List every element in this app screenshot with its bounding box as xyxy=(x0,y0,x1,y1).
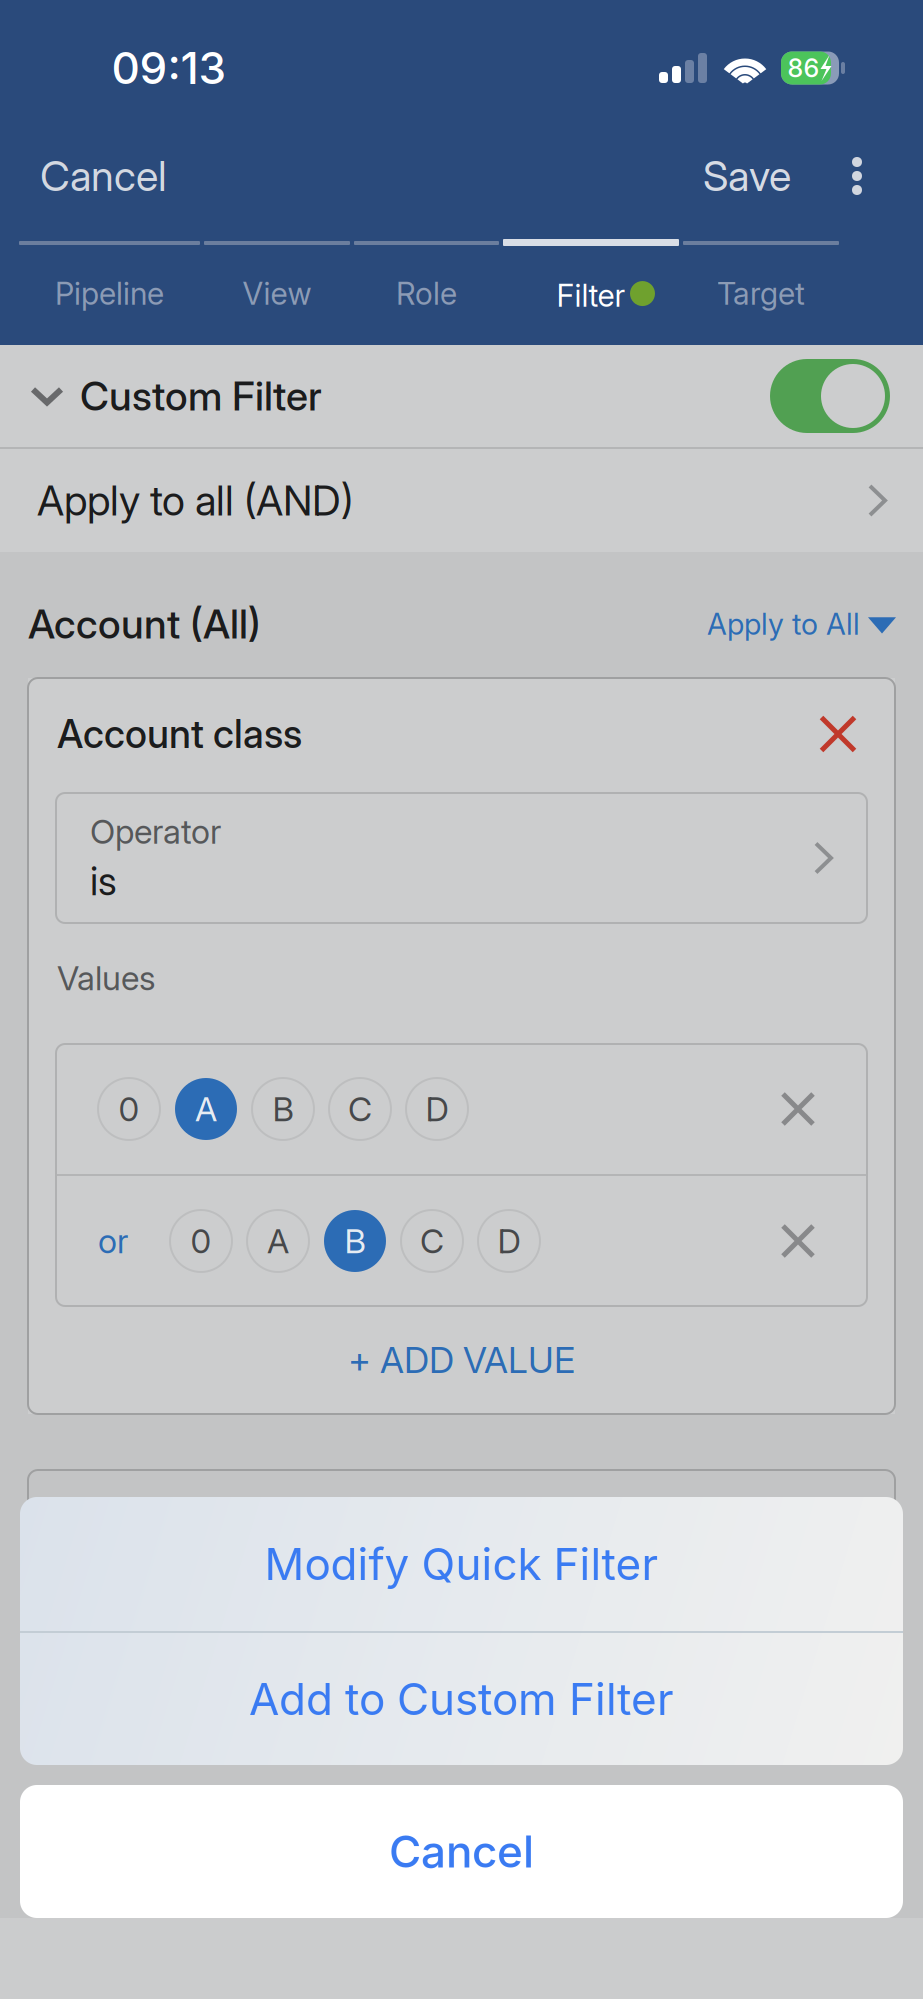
staticText: 0 xyxy=(190,1221,211,1261)
button[interactable]: A xyxy=(175,1078,237,1140)
staticText: 86 xyxy=(787,53,819,83)
button[interactable]: Role xyxy=(352,239,501,349)
button[interactable]: More options xyxy=(824,120,890,232)
button[interactable]: C xyxy=(329,1078,391,1140)
staticText: + ADD VALUE xyxy=(348,1338,575,1382)
staticText: Target xyxy=(717,275,805,312)
staticText: 09:13 xyxy=(111,41,226,95)
button[interactable]: 0 xyxy=(170,1210,232,1272)
staticText: Cancel xyxy=(40,151,167,201)
staticText: D xyxy=(497,1221,520,1261)
staticText: Apply to all (AND) xyxy=(37,475,353,525)
button[interactable]: 0 xyxy=(98,1078,160,1140)
button[interactable]: B xyxy=(252,1078,314,1140)
button[interactable]: Modify Quick Filter xyxy=(20,1497,903,1631)
staticText: Role xyxy=(396,275,457,312)
staticText: C xyxy=(420,1221,444,1261)
button[interactable]: D xyxy=(478,1210,540,1272)
staticText: Cancel xyxy=(389,1825,534,1878)
staticText: is xyxy=(90,858,117,905)
staticText: D xyxy=(425,1089,448,1129)
staticText: Values xyxy=(57,958,156,998)
button[interactable]: Apply to All xyxy=(707,606,923,642)
staticText: C xyxy=(348,1089,372,1129)
button[interactable]: B xyxy=(324,1210,386,1272)
button[interactable]: Remove value xyxy=(763,1206,867,1276)
button[interactable]: D xyxy=(406,1078,468,1140)
button[interactable]: View xyxy=(202,239,352,349)
staticText: Filter xyxy=(556,277,625,314)
button[interactable]: Remove condition xyxy=(803,699,895,769)
staticText: Add to Custom Filter xyxy=(249,1672,674,1726)
staticText: B xyxy=(344,1221,365,1261)
staticText: Operator xyxy=(90,811,221,852)
button[interactable]: Save xyxy=(703,120,791,232)
staticText: View xyxy=(242,275,311,312)
staticText: or xyxy=(98,1221,128,1261)
button[interactable]: Cancel xyxy=(20,1785,903,1918)
button[interactable]: Cancel xyxy=(0,120,167,232)
staticText: Custom Filter xyxy=(80,372,322,420)
staticText: A xyxy=(267,1221,289,1261)
button[interactable]: Remove value xyxy=(763,1074,867,1144)
staticText: Save xyxy=(703,151,791,201)
staticText: Account (All) xyxy=(28,600,261,648)
button[interactable]: Add to Custom Filter xyxy=(20,1633,903,1765)
staticText: B xyxy=(272,1089,293,1129)
button[interactable]: Custom Filter xyxy=(0,345,923,447)
staticText: Modify Quick Filter xyxy=(264,1537,658,1591)
button[interactable]: C xyxy=(401,1210,463,1272)
button[interactable]: Pipeline xyxy=(17,239,202,349)
button[interactable]: Operator xyxy=(56,793,867,923)
staticText: Account class xyxy=(57,711,302,757)
staticText: A xyxy=(195,1089,217,1129)
staticText: Apply to All xyxy=(707,606,860,642)
button[interactable]: Apply to all (AND) xyxy=(0,449,923,552)
button[interactable]: Filter xyxy=(501,239,681,349)
staticText: 0 xyxy=(118,1089,139,1129)
button[interactable]: A xyxy=(247,1210,309,1272)
button[interactable]: Target xyxy=(681,239,841,349)
staticText: Pipeline xyxy=(55,275,164,312)
button[interactable]: + ADD VALUE xyxy=(28,1306,895,1414)
